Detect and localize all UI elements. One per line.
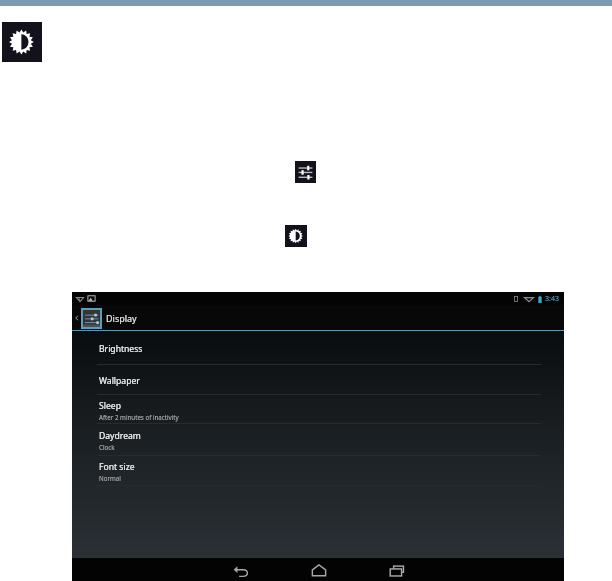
button[interactable]: Settings xyxy=(295,161,316,183)
button[interactable]: Display brightness xyxy=(285,225,307,247)
staticText: After 2 minutes of inactivity xyxy=(99,413,179,421)
staticText: Font size xyxy=(99,461,135,473)
staticText: Sleep xyxy=(99,400,121,412)
button[interactable]: Wallpaper xyxy=(97,365,541,395)
staticText: Wallpaper xyxy=(99,375,140,387)
button[interactable]: Recent apps xyxy=(358,558,434,581)
button[interactable]: Back xyxy=(206,558,282,581)
button[interactable]: Daydream xyxy=(97,424,541,456)
staticText: 3:43 xyxy=(545,294,559,304)
button[interactable]: Home xyxy=(282,558,358,581)
staticText: Normal xyxy=(99,474,121,482)
button[interactable]: Brightness xyxy=(2,22,42,62)
staticText: Clock xyxy=(99,443,115,451)
button[interactable]: Sleep xyxy=(97,395,541,424)
staticText: Display xyxy=(106,312,137,324)
button[interactable]: Font size xyxy=(97,456,541,486)
staticText: Daydream xyxy=(99,430,141,442)
staticText: Brightness xyxy=(99,343,143,355)
button[interactable]: Brightness xyxy=(97,331,541,365)
